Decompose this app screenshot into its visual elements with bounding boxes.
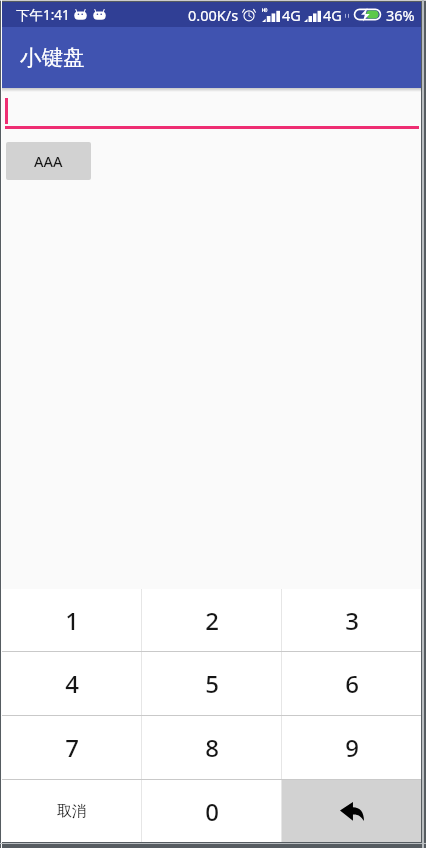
button[interactable]: 2 xyxy=(142,589,281,651)
button[interactable]: 4 xyxy=(2,652,141,715)
staticText: 1 xyxy=(65,604,79,637)
staticText: 小键盘 xyxy=(20,44,85,71)
staticText: 6 xyxy=(345,667,359,700)
staticText: 取消 xyxy=(57,802,87,821)
staticText: 4 xyxy=(65,667,79,700)
button[interactable]: 3 xyxy=(282,589,421,651)
button[interactable]: 5 xyxy=(142,652,281,715)
button[interactable]: 取消 xyxy=(2,780,141,842)
button[interactable]: 8 xyxy=(142,716,281,779)
button[interactable]: Backspace xyxy=(282,780,421,842)
button[interactable]: 7 xyxy=(2,716,141,779)
staticText: 7 xyxy=(65,731,79,764)
staticText: 36% xyxy=(386,5,415,25)
button[interactable]: 1 xyxy=(2,589,141,651)
staticText: 3 xyxy=(345,604,359,637)
staticText: AAA xyxy=(34,151,63,171)
staticText: 4G xyxy=(323,5,342,25)
staticText: 0.00K/s xyxy=(188,5,239,25)
button[interactable]: 6 xyxy=(282,652,421,715)
staticText: 2 xyxy=(205,604,219,637)
button[interactable]: 0 xyxy=(142,780,281,842)
staticText: 8 xyxy=(205,731,219,764)
staticText: 0 xyxy=(205,795,219,828)
staticText: 5 xyxy=(205,667,219,700)
staticText: 4G xyxy=(282,5,301,25)
button[interactable]: 9 xyxy=(282,716,421,779)
staticText: 9 xyxy=(345,731,359,764)
button[interactable]: AAA xyxy=(6,142,91,180)
staticText: 下午1:41 xyxy=(16,6,70,24)
